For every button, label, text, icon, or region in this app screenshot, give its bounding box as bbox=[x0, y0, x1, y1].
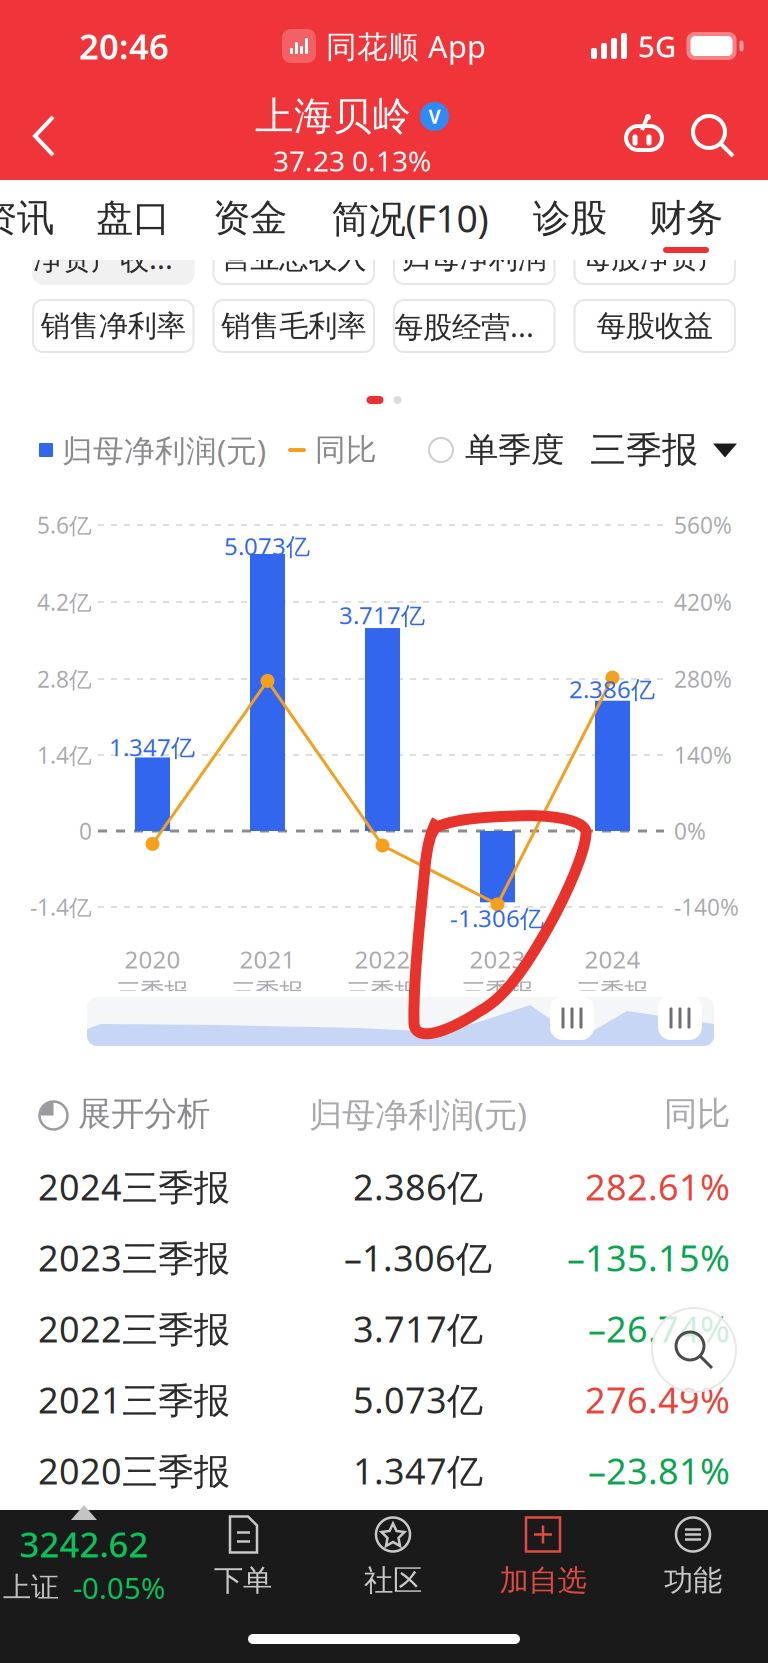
button[interactable]: 2022三季报 bbox=[0, 1293, 768, 1364]
staticText: 2023 bbox=[469, 943, 525, 975]
button[interactable]: 社区 bbox=[318, 1510, 468, 1602]
staticText: 2022三季报 bbox=[38, 1305, 230, 1352]
staticText: 2024三季报 bbox=[38, 1163, 230, 1210]
staticText: 2024 bbox=[584, 943, 640, 975]
staticText: 上海贝岭 bbox=[255, 93, 411, 140]
staticText: 功能 bbox=[664, 1562, 722, 1598]
staticText: -140% bbox=[674, 892, 739, 922]
button[interactable]: 3242.62 bbox=[0, 1510, 168, 1602]
staticText: 282.61% bbox=[585, 1163, 730, 1210]
button[interactable]: 销售净利率 bbox=[33, 300, 193, 352]
staticText: 0% bbox=[674, 816, 706, 846]
button[interactable]: 下单 bbox=[168, 1510, 318, 1602]
staticText: V bbox=[428, 104, 440, 129]
button[interactable]: 净资产收益率 bbox=[33, 232, 193, 284]
staticText: 诊股 bbox=[533, 195, 607, 241]
staticText: 4.2亿 bbox=[37, 587, 92, 617]
button[interactable]: 功能 bbox=[618, 1510, 768, 1602]
button[interactable]: 2024三季报 bbox=[0, 1151, 768, 1222]
button[interactable]: 简况(F10) bbox=[310, 196, 510, 276]
button[interactable]: 每股经营现... bbox=[394, 300, 554, 352]
staticText: 2023三季报 bbox=[38, 1234, 230, 1281]
button[interactable]: 盘口 bbox=[33, 196, 233, 276]
button[interactable]: 搜索 bbox=[652, 1308, 736, 1392]
button[interactable]: 加自选 bbox=[468, 1510, 618, 1602]
staticText: 财务 bbox=[649, 195, 723, 241]
staticText: 三季报 bbox=[231, 977, 303, 1007]
staticText: 同花顺 App bbox=[326, 26, 486, 66]
staticText: 3242.62 bbox=[19, 1521, 148, 1567]
button[interactable]: 搜索 bbox=[690, 113, 736, 159]
staticText: 同比 bbox=[664, 1093, 730, 1134]
staticText: -1.4亿 bbox=[30, 892, 92, 922]
staticText: 2020 bbox=[124, 943, 180, 975]
staticText: 简况(F10) bbox=[331, 193, 488, 243]
staticText: 2021三季报 bbox=[38, 1376, 230, 1423]
staticText: 营业总收入 bbox=[221, 240, 366, 276]
staticText: 20:46 bbox=[79, 23, 169, 69]
staticText: 5.6亿 bbox=[37, 510, 92, 540]
button[interactable]: 财务 bbox=[586, 196, 768, 276]
staticText: –135.15% bbox=[567, 1234, 730, 1281]
staticText: 三季报 bbox=[116, 977, 188, 1007]
button[interactable]: 每股收益 bbox=[574, 300, 735, 352]
staticText: 归母净利润(元) bbox=[309, 1092, 527, 1136]
button[interactable]: 资金 bbox=[150, 196, 350, 276]
button[interactable]: 资讯 bbox=[0, 196, 117, 276]
staticText: 2.386亿 bbox=[569, 673, 655, 705]
staticText: –26.74% bbox=[588, 1305, 730, 1352]
staticText: 5G bbox=[638, 26, 676, 65]
button[interactable]: 归母净利润 bbox=[394, 232, 554, 284]
staticText: 5.073亿 bbox=[353, 1376, 483, 1423]
staticText: 3.717亿 bbox=[353, 1305, 483, 1352]
button[interactable]: 返回 bbox=[0, 92, 88, 180]
staticText: 560% bbox=[674, 510, 732, 540]
button[interactable]: 营业总收入 bbox=[213, 232, 374, 284]
staticText: -1.306亿 bbox=[450, 902, 544, 934]
button[interactable]: 调整区间 bbox=[550, 996, 594, 1040]
staticText: 单季度 bbox=[465, 429, 564, 470]
button[interactable]: 智能助手 bbox=[616, 112, 668, 160]
staticText: 资讯 bbox=[0, 195, 54, 241]
staticText: 归母净利润 bbox=[402, 240, 547, 276]
staticText: 三季报 bbox=[346, 977, 418, 1007]
staticText: 每股净资产 bbox=[582, 240, 727, 276]
staticText: 2022 bbox=[354, 943, 410, 975]
staticText: 归母净利润(元) bbox=[62, 430, 266, 470]
staticText: 每股经营现... bbox=[394, 306, 554, 345]
staticText: 3.717亿 bbox=[339, 599, 425, 631]
staticText: -0.05% bbox=[73, 1568, 165, 1607]
button[interactable]: 2021三季报 bbox=[0, 1364, 768, 1435]
button[interactable]: 调整区间 bbox=[658, 996, 702, 1040]
staticText: 276.49% bbox=[585, 1376, 730, 1423]
button[interactable]: 每股净资产 bbox=[574, 232, 735, 284]
staticText: 上证 bbox=[3, 1570, 59, 1605]
staticText: 37.23 0.13% bbox=[273, 142, 431, 179]
staticText: 5.073亿 bbox=[224, 530, 310, 562]
button[interactable]: 单季度 bbox=[429, 429, 564, 470]
button[interactable]: 2023三季报 bbox=[0, 1222, 768, 1293]
staticText: 420% bbox=[674, 587, 732, 617]
staticText: 资金 bbox=[213, 195, 287, 241]
staticText: 1.4亿 bbox=[37, 740, 92, 770]
button[interactable]: 诊股 bbox=[470, 196, 670, 276]
staticText: 1.347亿 bbox=[109, 731, 195, 763]
staticText: 2.8亿 bbox=[37, 664, 92, 694]
staticText: 同比 bbox=[315, 431, 377, 469]
staticText: 销售净利率 bbox=[41, 308, 186, 344]
staticText: 盘口 bbox=[96, 195, 170, 241]
staticText: 0 bbox=[79, 816, 92, 846]
staticText: 2.386亿 bbox=[353, 1163, 483, 1210]
button[interactable]: 销售毛利率 bbox=[213, 300, 374, 352]
staticText: 展开分析 bbox=[78, 1093, 210, 1134]
staticText: 销售毛利率 bbox=[221, 308, 366, 344]
staticText: 每股收益 bbox=[597, 308, 713, 344]
staticText: 三季报 bbox=[590, 428, 698, 472]
staticText: –1.306亿 bbox=[344, 1234, 492, 1281]
button[interactable]: 2020三季报 bbox=[0, 1435, 768, 1506]
button[interactable]: 展开分析 bbox=[38, 1080, 288, 1148]
button[interactable]: 三季报 bbox=[564, 428, 768, 472]
staticText: 三季报 bbox=[576, 977, 648, 1007]
staticText: 三季报 bbox=[461, 977, 533, 1007]
staticText: 280% bbox=[674, 664, 732, 694]
